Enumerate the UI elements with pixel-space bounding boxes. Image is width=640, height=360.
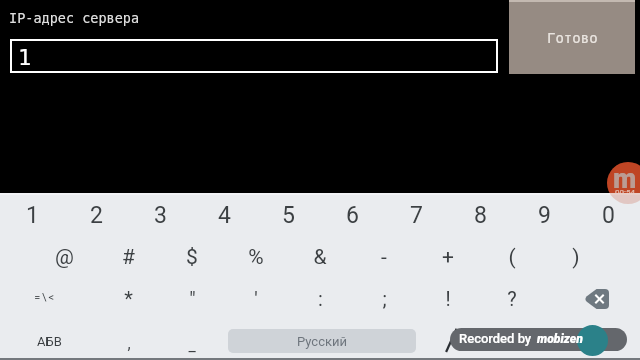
- button[interactable]: 2: [64, 194, 128, 236]
- button[interactable]: АБВ: [17, 320, 81, 360]
- button[interactable]: ): [544, 236, 608, 278]
- button[interactable]: +: [416, 236, 480, 278]
- staticText: 9: [538, 202, 551, 229]
- button[interactable]: Backspace: [564, 279, 628, 319]
- staticText: @: [55, 245, 74, 270]
- staticText: 0: [602, 202, 615, 229]
- button[interactable]: 3: [128, 194, 192, 236]
- staticText: ?: [507, 287, 517, 310]
- staticText: =\<: [34, 291, 56, 304]
- staticText: (: [508, 245, 516, 270]
- button[interactable]: :: [288, 277, 352, 319]
- staticText: ): [572, 245, 580, 270]
- staticText: 5: [282, 202, 295, 229]
- staticText: mobizen: [537, 332, 583, 346]
- button[interactable]: Готово: [509, 0, 635, 74]
- staticText: 00:54: [615, 188, 635, 197]
- button[interactable]: &: [288, 236, 352, 278]
- staticText: #: [122, 245, 135, 270]
- staticText: &: [313, 245, 327, 270]
- button[interactable]: (: [480, 236, 544, 278]
- button[interactable]: 7: [384, 194, 448, 236]
- staticText: 7: [410, 202, 423, 229]
- button[interactable]: ,: [97, 322, 161, 360]
- staticText: 6: [346, 202, 359, 229]
- staticText: 00:54: [615, 188, 635, 197]
- button[interactable]: ;: [352, 277, 416, 319]
- staticText: $: [186, 245, 198, 270]
- staticText: 3: [154, 202, 167, 229]
- staticText: Готово: [547, 30, 598, 46]
- staticText: 2: [90, 202, 103, 229]
- staticText: ": [189, 287, 196, 310]
- staticText: +: [442, 245, 454, 270]
- staticText: *: [124, 287, 133, 310]
- staticText: m: [613, 163, 637, 195]
- button[interactable]: ?: [480, 277, 544, 319]
- staticText: Recorded by: [459, 331, 532, 346]
- staticText: IP-адрес сервера: [9, 10, 140, 26]
- staticText: ,: [127, 334, 131, 353]
- button[interactable]: @: [32, 236, 96, 278]
- staticText: m: [613, 163, 637, 195]
- button[interactable]: Русский: [228, 329, 416, 353]
- button[interactable]: 0: [576, 194, 640, 236]
- staticText: Русский: [297, 334, 348, 349]
- button[interactable]: 1: [0, 194, 64, 236]
- staticText: 1: [26, 202, 39, 229]
- staticText: :: [318, 287, 323, 310]
- button[interactable]: %: [224, 236, 288, 278]
- staticText: 8: [474, 202, 487, 229]
- button[interactable]: =\<: [13, 276, 77, 318]
- button[interactable]: ": [160, 277, 224, 319]
- staticText: ;: [382, 287, 387, 310]
- staticText: %: [248, 245, 264, 270]
- button[interactable]: *: [96, 277, 160, 319]
- staticText: 1: [18, 45, 32, 71]
- button[interactable]: 9: [512, 194, 576, 236]
- button[interactable]: _: [160, 324, 224, 360]
- staticText: АБВ: [37, 334, 62, 349]
- staticText: 4: [218, 202, 231, 229]
- button[interactable]: 5: [256, 194, 320, 236]
- staticText: ': [254, 287, 258, 310]
- staticText: !: [445, 287, 451, 310]
- staticText: -: [381, 245, 387, 270]
- button[interactable]: 1: [10, 39, 498, 73]
- button[interactable]: ': [224, 277, 288, 319]
- button[interactable]: 4: [192, 194, 256, 236]
- staticText: _: [188, 336, 196, 355]
- button[interactable]: 6: [320, 194, 384, 236]
- button[interactable]: #: [96, 236, 160, 278]
- button[interactable]: !: [416, 277, 480, 319]
- button[interactable]: -: [352, 236, 416, 278]
- button[interactable]: $: [160, 236, 224, 278]
- button[interactable]: 8: [448, 194, 512, 236]
